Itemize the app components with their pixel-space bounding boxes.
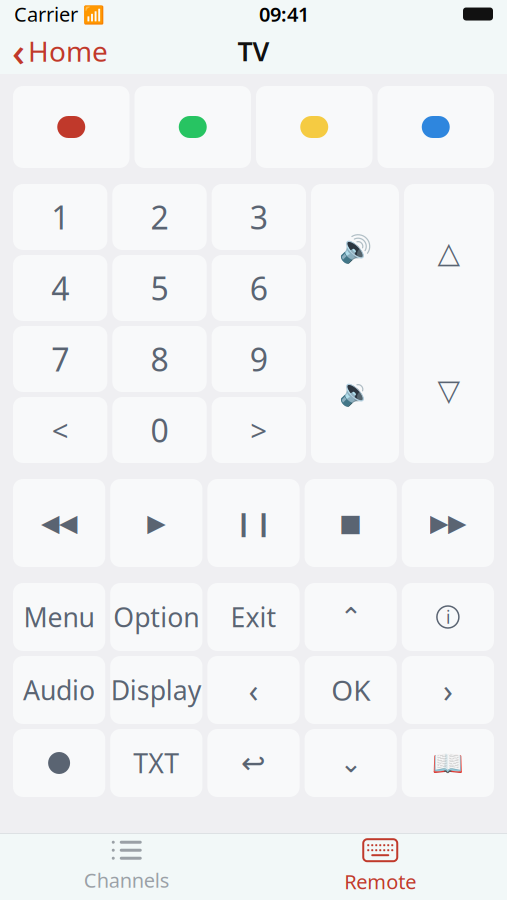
staticText: ❙❙ bbox=[233, 509, 273, 537]
staticText: Remote bbox=[344, 868, 416, 895]
button[interactable]: Volume bbox=[311, 184, 399, 463]
staticText: 5 bbox=[150, 267, 168, 309]
staticText: 7 bbox=[51, 338, 69, 380]
staticText: ‹ bbox=[12, 24, 25, 77]
staticText: 📶 bbox=[78, 2, 105, 25]
staticText: Option bbox=[113, 599, 199, 635]
staticText: 📖 bbox=[432, 748, 464, 777]
button[interactable]: 2 bbox=[112, 184, 207, 250]
staticText: ⌃ bbox=[340, 602, 362, 632]
button[interactable]: 1 bbox=[13, 184, 107, 250]
staticText: 1 bbox=[51, 196, 69, 238]
staticText: Home bbox=[28, 32, 108, 70]
button[interactable]: Record bbox=[13, 729, 105, 797]
staticText: Channels bbox=[84, 867, 170, 893]
button[interactable]: Remote bbox=[253, 834, 507, 900]
button[interactable]: Back bbox=[207, 729, 300, 797]
button[interactable]: 6 bbox=[212, 255, 306, 321]
staticText: 🔉 bbox=[338, 376, 371, 407]
staticText: TV bbox=[237, 33, 269, 69]
button[interactable]: Option bbox=[110, 583, 202, 651]
button[interactable]: OK bbox=[305, 656, 397, 724]
staticText: i bbox=[446, 605, 450, 628]
staticText: 4 bbox=[51, 267, 69, 309]
button[interactable]: Blue button bbox=[377, 86, 494, 168]
staticText: › bbox=[443, 669, 453, 711]
button[interactable]: 5 bbox=[112, 255, 207, 321]
button[interactable]: > bbox=[212, 397, 306, 463]
button[interactable]: ‹ bbox=[0, 29, 120, 73]
button[interactable]: Info bbox=[402, 583, 494, 651]
button[interactable]: Guide bbox=[402, 729, 494, 797]
staticText: 0 bbox=[150, 409, 168, 451]
button[interactable]: < bbox=[13, 397, 107, 463]
staticText: Menu bbox=[24, 599, 95, 635]
staticText: < bbox=[52, 410, 69, 449]
staticText: ■ bbox=[339, 509, 362, 537]
button[interactable]: Rewind bbox=[13, 479, 105, 567]
button[interactable]: 7 bbox=[13, 326, 107, 392]
button[interactable]: Play bbox=[110, 479, 202, 567]
staticText: OK bbox=[331, 671, 370, 709]
button[interactable]: Down bbox=[305, 729, 397, 797]
staticText: ◀◀ bbox=[41, 509, 77, 537]
button[interactable]: Display bbox=[110, 656, 202, 724]
staticText: > bbox=[250, 410, 267, 449]
button[interactable]: 4 bbox=[13, 255, 107, 321]
staticText: Display bbox=[111, 672, 202, 708]
button[interactable]: Exit bbox=[207, 583, 300, 651]
button[interactable]: Yellow button bbox=[256, 86, 372, 168]
button[interactable]: Fast forward bbox=[402, 479, 494, 567]
button[interactable]: 3 bbox=[212, 184, 306, 250]
button[interactable]: Channel bbox=[404, 184, 494, 463]
button[interactable]: Red button bbox=[13, 86, 129, 168]
staticText: TXT bbox=[133, 745, 179, 781]
staticText: 3 bbox=[250, 196, 268, 238]
staticText: Exit bbox=[230, 599, 276, 635]
staticText: 6 bbox=[250, 267, 268, 309]
button[interactable]: Up bbox=[305, 583, 397, 651]
staticText: 2 bbox=[150, 196, 168, 238]
button[interactable]: Green button bbox=[134, 86, 251, 168]
staticText: ▶▶ bbox=[430, 509, 466, 537]
button[interactable]: Menu bbox=[13, 583, 105, 651]
staticText: Carrier bbox=[14, 1, 78, 27]
staticText: 🔊 bbox=[338, 234, 371, 264]
staticText: Audio bbox=[23, 672, 95, 708]
staticText: ↩ bbox=[241, 746, 266, 780]
button[interactable]: TXT bbox=[110, 729, 202, 797]
staticText: ‹ bbox=[248, 669, 258, 711]
button[interactable]: Pause bbox=[207, 479, 300, 567]
button[interactable]: 9 bbox=[212, 326, 306, 392]
staticText: 09:41 bbox=[259, 1, 309, 27]
button[interactable]: ‹ bbox=[207, 656, 300, 724]
staticText: 8 bbox=[150, 338, 168, 380]
staticText: ▶ bbox=[147, 509, 165, 537]
staticText: 9 bbox=[250, 338, 268, 380]
button[interactable]: 8 bbox=[112, 326, 207, 392]
button[interactable]: Channels bbox=[0, 834, 253, 900]
staticText: ⌄ bbox=[340, 748, 362, 778]
button[interactable]: 0 bbox=[112, 397, 207, 463]
button[interactable]: Audio bbox=[13, 656, 105, 724]
staticText: △ bbox=[437, 236, 460, 269]
button[interactable]: Stop bbox=[305, 479, 397, 567]
staticText: ▽ bbox=[437, 374, 460, 407]
button[interactable]: › bbox=[402, 656, 494, 724]
